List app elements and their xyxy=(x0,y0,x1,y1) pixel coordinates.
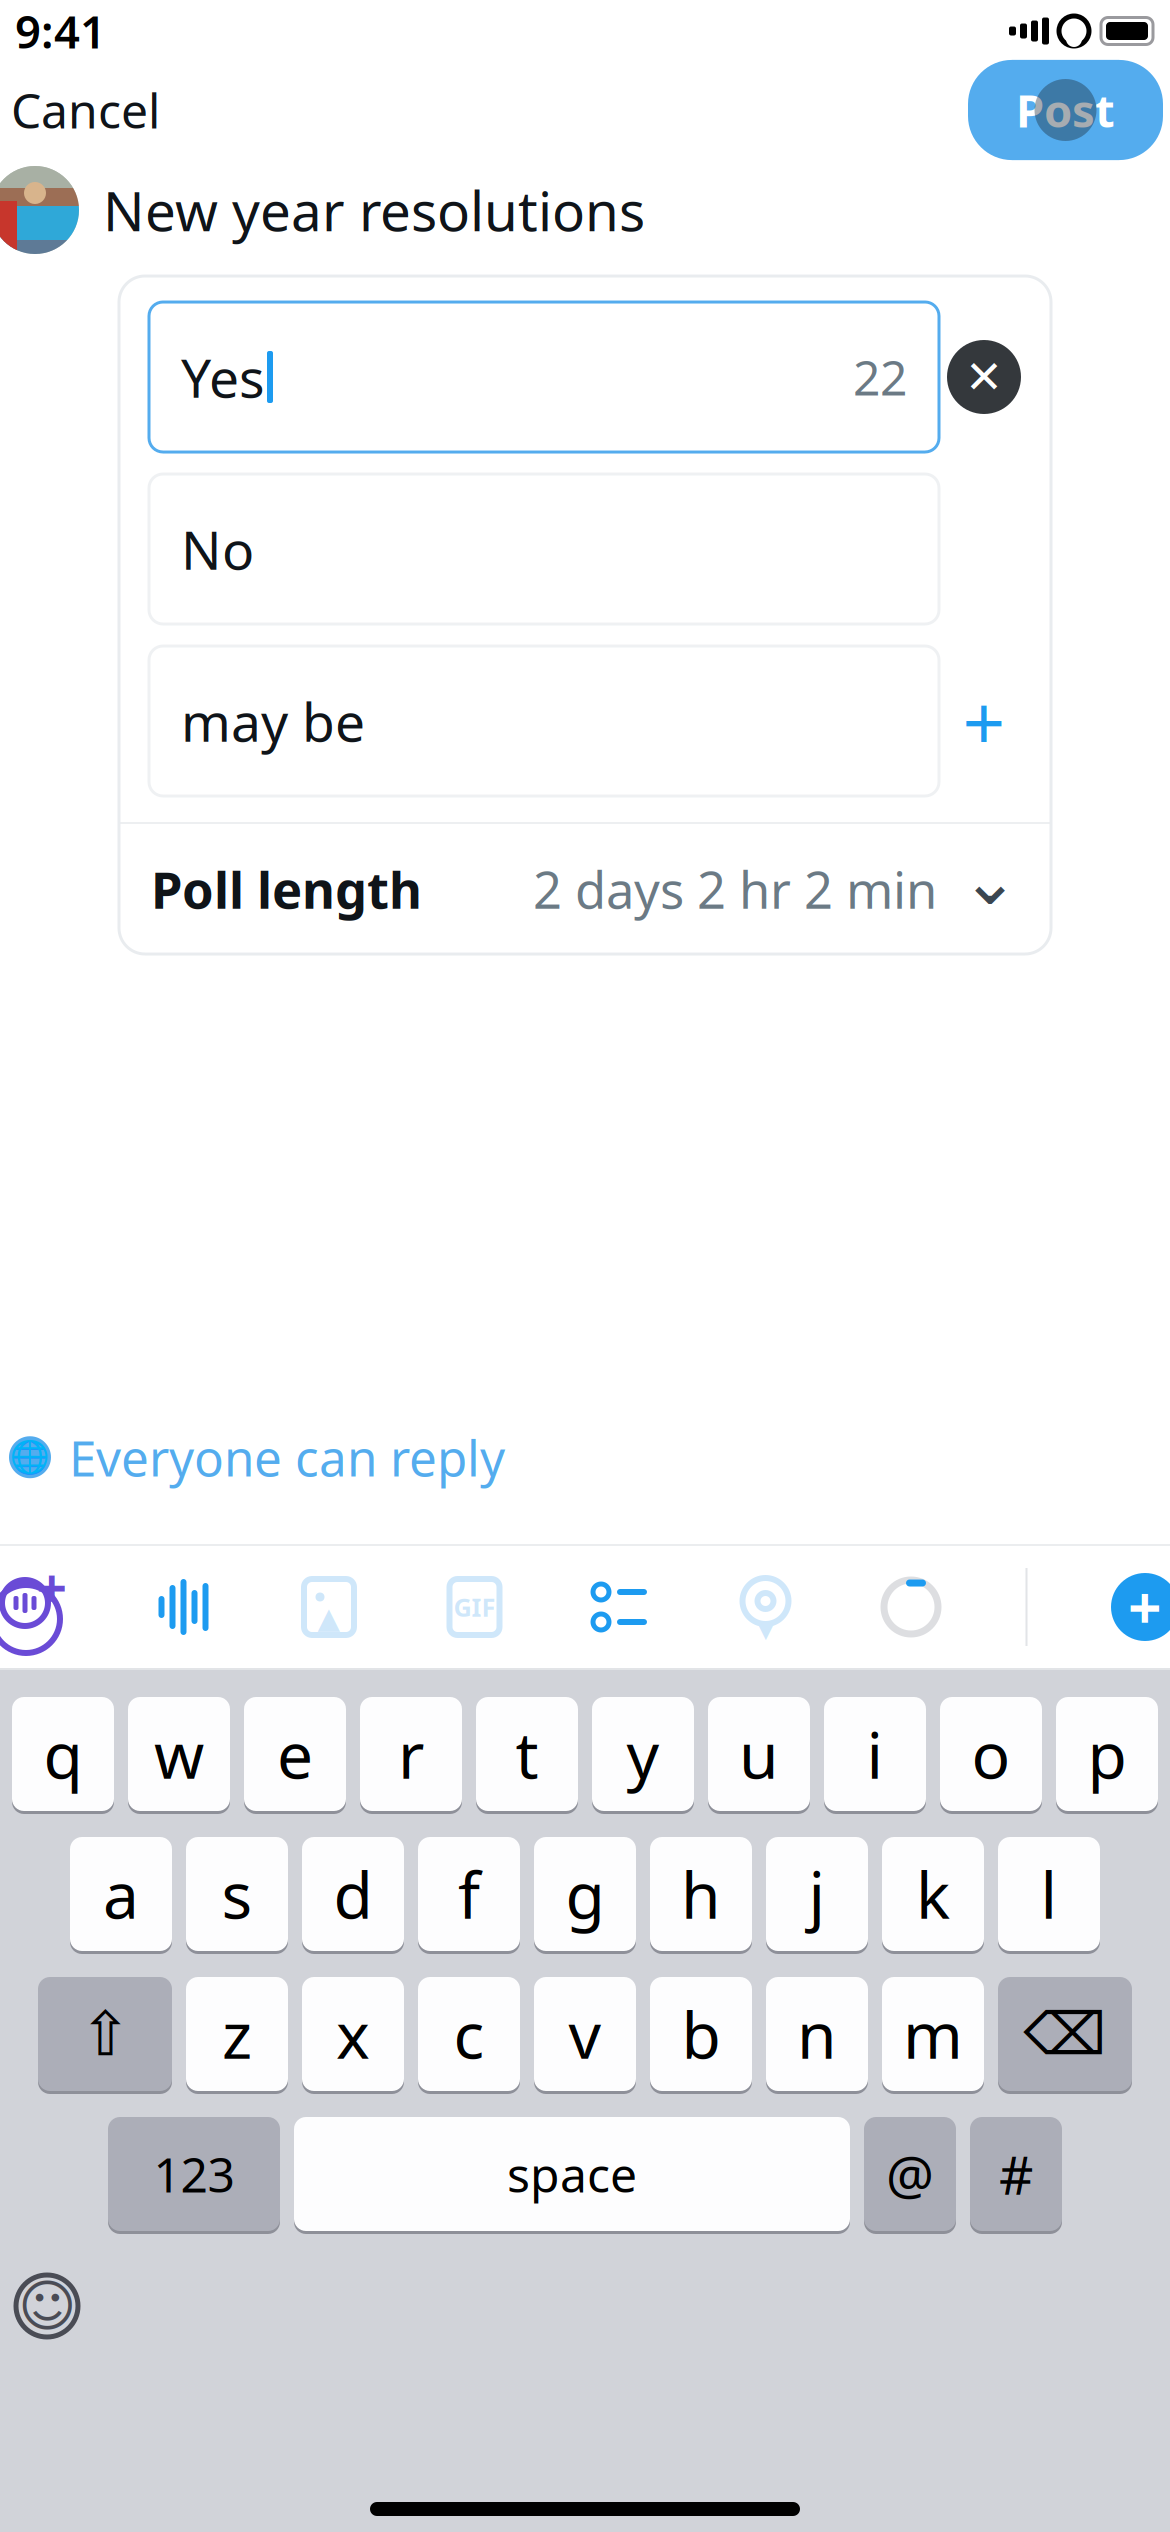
staticText: y xyxy=(626,1711,659,1796)
staticText: Cancel xyxy=(11,78,160,142)
staticText: d xyxy=(333,1851,372,1936)
staticText: ☺ xyxy=(18,2274,76,2338)
button[interactable]: o xyxy=(940,1694,1042,1814)
button[interactable]: # xyxy=(970,2114,1062,2234)
button[interactable]: z xyxy=(186,1974,288,2094)
button[interactable]: g xyxy=(534,1834,636,1954)
staticText: p xyxy=(1087,1711,1126,1796)
staticText: New year resolutions xyxy=(103,174,645,246)
button[interactable]: e xyxy=(244,1694,346,1814)
staticText: 2 days 2 hr 2 min xyxy=(533,855,937,923)
button[interactable]: w xyxy=(128,1694,230,1814)
staticText: ⇧ xyxy=(79,1999,130,2069)
staticText: x xyxy=(336,1991,370,2076)
button[interactable]: h xyxy=(650,1834,752,1954)
button[interactable]: m xyxy=(882,1974,984,2094)
staticText: Poll length xyxy=(151,855,422,923)
button[interactable]: Voice xyxy=(152,1576,214,1638)
staticText: ▼ xyxy=(756,1615,774,1643)
staticText: ⌄ xyxy=(961,841,1019,919)
button[interactable]: Add post xyxy=(1111,1568,1170,1646)
button[interactable]: s xyxy=(186,1834,288,1954)
staticText: 🌐 xyxy=(10,1439,50,1476)
button[interactable]: u xyxy=(708,1694,810,1814)
staticText: ▲ xyxy=(317,1601,340,1635)
button[interactable]: c xyxy=(418,1974,520,2094)
staticText: z xyxy=(222,1991,252,2076)
staticText: r xyxy=(398,1711,424,1796)
staticText: u xyxy=(739,1711,779,1796)
staticText: 22 xyxy=(853,345,907,409)
staticText: c xyxy=(453,1991,484,2076)
button[interactable]: i xyxy=(824,1694,926,1814)
staticText: # xyxy=(999,2139,1033,2209)
staticText: No xyxy=(181,514,254,584)
button[interactable]: Emoji xyxy=(5,2264,89,2348)
staticText: s xyxy=(221,1851,252,1936)
button[interactable]: t xyxy=(476,1694,578,1814)
staticText: n xyxy=(797,1991,837,2076)
button[interactable]: No xyxy=(149,474,939,624)
button[interactable]: space xyxy=(294,2114,850,2234)
button[interactable]: Location xyxy=(734,1576,796,1638)
staticText: GIF xyxy=(453,1590,495,1624)
staticText: f xyxy=(458,1851,480,1936)
button[interactable]: Photo xyxy=(298,1576,360,1638)
staticText: + xyxy=(1128,1568,1162,1646)
button[interactable]: n xyxy=(766,1974,868,2094)
button[interactable]: l xyxy=(998,1834,1100,1954)
staticText: Yes xyxy=(181,342,265,412)
button[interactable]: a xyxy=(70,1834,172,1954)
button[interactable]: Yes xyxy=(149,302,939,452)
button[interactable]: GIF xyxy=(443,1576,505,1638)
staticText: Everyone can reply xyxy=(69,1424,505,1490)
button[interactable]: k xyxy=(882,1834,984,1954)
button[interactable]: 123 xyxy=(108,2114,280,2234)
button[interactable]: Post xyxy=(968,60,1163,160)
staticText: i xyxy=(866,1711,883,1796)
staticText: w xyxy=(154,1711,204,1796)
staticText: + xyxy=(36,1552,67,1622)
button[interactable]: @ xyxy=(864,2114,956,2234)
button[interactable]: b xyxy=(650,1974,752,2094)
staticText: v xyxy=(568,1991,601,2076)
staticText: + xyxy=(962,671,1005,771)
button[interactable]: p xyxy=(1056,1694,1158,1814)
staticText: h xyxy=(681,1851,721,1936)
staticText: 123 xyxy=(153,2142,234,2206)
button[interactable]: j xyxy=(766,1834,868,1954)
staticText: o xyxy=(971,1711,1010,1796)
button[interactable]: Create audio xyxy=(0,1568,69,1646)
staticText: j xyxy=(808,1851,825,1936)
button[interactable]: y xyxy=(592,1694,694,1814)
button[interactable]: Add choice xyxy=(947,684,1021,758)
staticText: b xyxy=(681,1991,720,2076)
button[interactable]: may be xyxy=(149,646,939,796)
button[interactable]: 🌐 xyxy=(9,1414,505,1500)
button[interactable]: Cancel xyxy=(7,64,164,156)
button[interactable]: r xyxy=(360,1694,462,1814)
staticText: l xyxy=(1040,1851,1057,1936)
button[interactable]: x xyxy=(302,1974,404,2094)
button[interactable]: q xyxy=(12,1694,114,1814)
button[interactable]: Poll xyxy=(589,1576,651,1638)
staticText: a xyxy=(103,1851,139,1936)
staticText: e xyxy=(277,1711,313,1796)
staticText: q xyxy=(43,1711,82,1796)
staticText: Post xyxy=(1016,80,1115,140)
button[interactable]: ⌫ xyxy=(998,1974,1132,2094)
staticText: may be xyxy=(181,686,365,756)
staticText: k xyxy=(916,1851,950,1936)
staticText: 9:41 xyxy=(15,1,106,61)
button[interactable]: ⇧ xyxy=(38,1974,172,2094)
button[interactable]: f xyxy=(418,1834,520,1954)
staticText: space xyxy=(507,2142,637,2206)
button[interactable]: Poll length xyxy=(119,824,1051,954)
staticText: @ xyxy=(886,2139,934,2209)
staticText: ✕ xyxy=(965,351,1003,403)
button[interactable]: d xyxy=(302,1834,404,1954)
staticText: ⌫ xyxy=(1023,2001,1106,2067)
staticText: t xyxy=(515,1711,538,1796)
button[interactable]: Remove choice xyxy=(947,340,1021,414)
button[interactable]: v xyxy=(534,1974,636,2094)
